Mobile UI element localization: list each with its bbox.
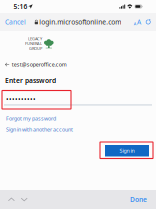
staticText: test@soperoffice.com [12,61,67,68]
staticText: Sign in [119,147,134,154]
staticText: Cancel [5,18,26,26]
button[interactable]: Reload [142,17,151,27]
button[interactable]: Previous field [5,194,18,205]
staticText: GROUP [29,46,42,51]
staticText: A [137,18,141,26]
staticText: Sign in with another account [6,126,73,133]
staticText: Done [130,195,147,204]
button[interactable]: Forgot my password [5,114,57,123]
staticText: FUNERAL [25,41,42,46]
staticText: Enter password [5,76,56,85]
staticText: Forgot my password [6,115,56,122]
staticText: LEGACY [28,36,42,41]
button[interactable]: Sign in with another account [5,125,74,134]
button[interactable]: Sign in [105,145,149,156]
button[interactable]: Cancel [4,15,27,29]
staticText: login.microsoftonline.com [39,18,121,26]
staticText: 5:16 [13,2,27,11]
button[interactable]: Page settings [133,15,142,29]
staticText: A [134,21,137,26]
staticText: •••••••••• [6,95,36,104]
button[interactable]: Done [128,192,149,207]
button[interactable]: Next field [18,194,31,205]
